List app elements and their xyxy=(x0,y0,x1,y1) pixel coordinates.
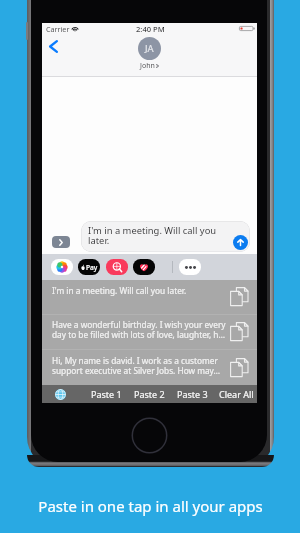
staticText: Paste in one tap in all your apps xyxy=(38,496,263,516)
staticText: JA xyxy=(145,42,154,55)
button[interactable]: Apple Pay xyxy=(78,259,100,275)
staticText: 2:40 PM xyxy=(136,24,165,34)
button[interactable]: Send xyxy=(233,235,248,250)
button[interactable]: Digital Touch xyxy=(133,259,155,275)
button[interactable]: Paste 3 xyxy=(171,385,213,403)
button[interactable]: Hi, My name is david. I work as a custom… xyxy=(42,350,257,386)
staticText: I'm in a meeting. Will call you later. xyxy=(52,285,226,296)
staticText: John xyxy=(140,61,155,71)
staticText: Paste 3 xyxy=(177,388,208,400)
staticText: Hi, My name is david. I work as a custom… xyxy=(52,355,226,377)
button[interactable]: Paste 1 xyxy=(85,385,127,403)
staticText: Clear All xyxy=(219,388,254,400)
button[interactable]: Clear All xyxy=(215,385,257,403)
staticText: Have a wonderful birthday. I wish your e… xyxy=(52,319,226,341)
button[interactable]: Photos xyxy=(51,259,73,275)
staticText: Paste 2 xyxy=(134,388,165,400)
staticText: I'm in a meeting. Will call you later. xyxy=(88,224,220,247)
staticText: Carrier xyxy=(46,24,70,34)
button[interactable]: More apps xyxy=(179,259,201,275)
button[interactable]: Show apps xyxy=(52,236,70,248)
button[interactable]: JA xyxy=(42,37,257,71)
staticText: Pay xyxy=(86,263,98,272)
button[interactable]: Home xyxy=(131,417,168,454)
staticText: Paste 1 xyxy=(91,388,122,400)
button[interactable]: Paste 2 xyxy=(128,385,170,403)
button[interactable]: Have a wonderful birthday. I wish your e… xyxy=(42,314,257,349)
button[interactable]: Back xyxy=(44,36,63,57)
button[interactable]: Language xyxy=(52,385,68,403)
button[interactable]: I'm in a meeting. Will call you later. xyxy=(42,280,257,314)
button[interactable]: Images xyxy=(106,259,128,275)
